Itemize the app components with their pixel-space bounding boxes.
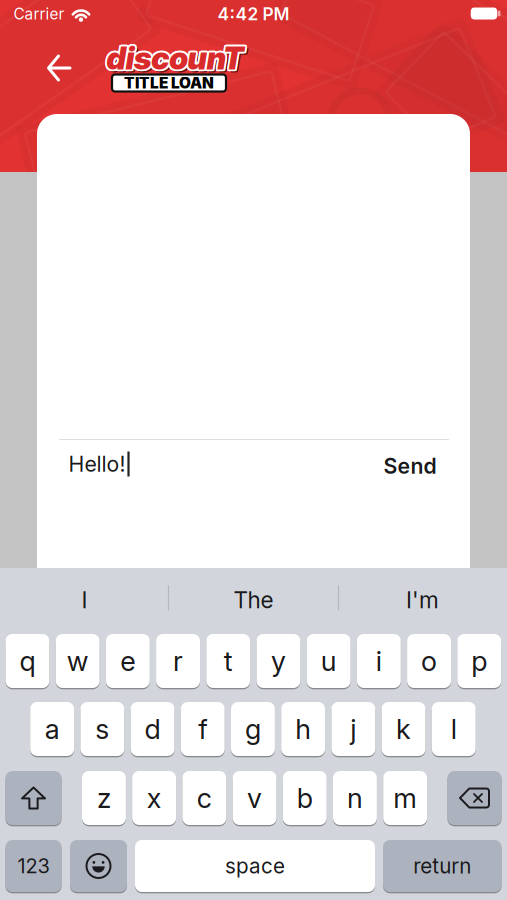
button[interactable]: b bbox=[283, 770, 327, 826]
button[interactable]: d bbox=[131, 701, 174, 757]
button[interactable]: z bbox=[82, 770, 126, 826]
staticText: discounT bbox=[104, 39, 242, 77]
button[interactable]: a bbox=[30, 701, 74, 757]
staticText: q bbox=[19, 644, 35, 678]
button[interactable] bbox=[70, 839, 127, 893]
button[interactable]: k bbox=[382, 701, 425, 757]
staticText: z bbox=[97, 781, 111, 815]
staticText: f bbox=[198, 712, 207, 746]
staticText: n bbox=[347, 781, 363, 815]
button[interactable]: i bbox=[357, 633, 401, 689]
button[interactable]: p bbox=[457, 633, 501, 689]
button[interactable]: I bbox=[0, 569, 168, 631]
staticText: discounT bbox=[109, 42, 246, 79]
staticText: discounT bbox=[106, 41, 244, 79]
button[interactable]: s bbox=[80, 701, 124, 757]
button[interactable] bbox=[5, 770, 61, 826]
staticText: p bbox=[471, 644, 487, 678]
button[interactable]: x bbox=[132, 770, 176, 826]
button[interactable]: h bbox=[281, 701, 325, 757]
staticText: s bbox=[95, 712, 109, 746]
staticText: discounT bbox=[109, 41, 247, 79]
staticText: TITLE LOAN bbox=[124, 74, 214, 92]
staticText: discounT bbox=[106, 37, 244, 75]
button[interactable]: y bbox=[256, 633, 300, 689]
button[interactable]: Hello! bbox=[68, 449, 130, 479]
staticText: discounT bbox=[105, 40, 242, 78]
staticText: g bbox=[245, 712, 261, 746]
button[interactable]: q bbox=[5, 633, 49, 689]
staticText: The bbox=[233, 586, 273, 614]
button[interactable]: space bbox=[135, 839, 375, 893]
staticText: o bbox=[421, 644, 437, 678]
staticText: discounT bbox=[108, 37, 245, 75]
staticText: I bbox=[81, 586, 87, 614]
staticText: w bbox=[67, 644, 89, 678]
button[interactable] bbox=[447, 770, 501, 826]
staticText: j bbox=[350, 712, 356, 746]
staticText: space bbox=[225, 853, 285, 878]
button[interactable]: The bbox=[169, 569, 337, 631]
staticText: c bbox=[197, 781, 212, 815]
button[interactable]: e bbox=[106, 633, 150, 689]
button[interactable]: r bbox=[156, 633, 200, 689]
staticText: Hello! bbox=[68, 451, 125, 477]
staticText: 4:42 PM bbox=[217, 3, 289, 24]
staticText: v bbox=[247, 781, 262, 815]
staticText: a bbox=[45, 712, 60, 746]
staticText: h bbox=[295, 712, 311, 746]
staticText: x bbox=[147, 781, 162, 815]
button[interactable]: u bbox=[307, 633, 351, 689]
staticText: I'm bbox=[406, 586, 439, 614]
staticText: discounT bbox=[108, 40, 245, 78]
staticText: m bbox=[393, 781, 417, 815]
staticText: discounT bbox=[106, 39, 244, 77]
staticText: return bbox=[413, 853, 471, 878]
button[interactable] bbox=[37, 46, 81, 90]
button[interactable]: 123 bbox=[5, 839, 61, 893]
staticText: b bbox=[297, 781, 313, 815]
staticText: 123 bbox=[17, 854, 49, 878]
button[interactable]: l bbox=[432, 701, 476, 757]
button[interactable]: m bbox=[383, 770, 427, 826]
button[interactable]: return bbox=[383, 839, 501, 893]
staticText: y bbox=[271, 644, 286, 678]
button[interactable]: I'm bbox=[339, 569, 505, 631]
button[interactable]: c bbox=[182, 770, 226, 826]
staticText: discounT bbox=[108, 42, 245, 80]
staticText: k bbox=[396, 712, 411, 746]
button[interactable]: n bbox=[333, 770, 377, 826]
staticText: discounT bbox=[105, 37, 242, 75]
button[interactable]: t bbox=[206, 633, 250, 689]
staticText: l bbox=[451, 712, 457, 746]
button[interactable]: w bbox=[56, 633, 100, 689]
staticText: r bbox=[173, 644, 183, 678]
staticText: Carrier bbox=[13, 5, 64, 23]
button[interactable]: g bbox=[231, 701, 275, 757]
staticText: i bbox=[376, 644, 382, 678]
staticText: discounT bbox=[108, 39, 245, 77]
staticText: t bbox=[224, 644, 233, 678]
button[interactable]: Send bbox=[383, 453, 436, 479]
button[interactable]: j bbox=[331, 701, 375, 757]
button[interactable]: v bbox=[233, 770, 276, 826]
staticText: e bbox=[120, 644, 135, 678]
button[interactable]: f bbox=[181, 701, 225, 757]
button[interactable]: o bbox=[407, 633, 451, 689]
staticText: u bbox=[321, 644, 337, 678]
staticText: Send bbox=[383, 453, 436, 479]
staticText: d bbox=[144, 712, 160, 746]
